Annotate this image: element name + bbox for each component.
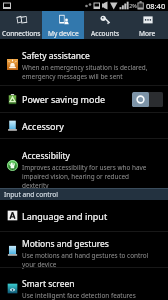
button[interactable]: Connections bbox=[0, 11, 42, 39]
staticText: Input and control bbox=[4, 190, 58, 199]
staticText: emergency messages will be sent bbox=[22, 72, 123, 81]
button[interactable]: Accounts bbox=[84, 11, 126, 39]
button[interactable]: Power saving mode toggle bbox=[132, 92, 163, 107]
staticText: Use motions and hand gestures to control bbox=[22, 251, 149, 260]
staticText: Improves accessibility for users who hav… bbox=[22, 163, 147, 172]
button[interactable]: Power saving mode bbox=[0, 86, 168, 112]
staticText: Safety assistance bbox=[22, 50, 90, 62]
staticText: Power saving mode bbox=[22, 93, 106, 105]
staticText: Language and input bbox=[22, 210, 108, 222]
staticText: Accessibility bbox=[22, 150, 70, 162]
button[interactable]: Motions and gestures bbox=[0, 232, 168, 267]
staticText: Accessory bbox=[22, 120, 64, 132]
staticText: impaired vision, hearing or reduced bbox=[22, 172, 130, 181]
staticText: Accounts bbox=[91, 29, 120, 38]
button[interactable]: Smart screen bbox=[0, 268, 168, 300]
staticText: 08:40 bbox=[146, 1, 166, 11]
staticText: My device bbox=[48, 29, 79, 38]
button[interactable]: Safety assistance bbox=[0, 39, 168, 85]
staticText: dexterity bbox=[22, 181, 49, 190]
staticText: Smart screen bbox=[22, 278, 75, 290]
staticText: 12% bbox=[126, 2, 137, 9]
staticText: Connections bbox=[2, 29, 41, 38]
button[interactable]: Accessibility bbox=[0, 139, 168, 188]
button[interactable]: More bbox=[126, 11, 168, 39]
staticText: Motions and gestures bbox=[22, 238, 109, 250]
button[interactable]: Language and input bbox=[0, 200, 168, 231]
staticText: your device bbox=[22, 260, 57, 269]
button[interactable]: My device bbox=[42, 11, 84, 39]
staticText: Use intelligent face detection features bbox=[22, 291, 136, 300]
button[interactable]: Accessory bbox=[0, 113, 168, 138]
staticText: More bbox=[139, 29, 156, 38]
staticText: When an emergency situation is declared, bbox=[22, 63, 148, 72]
